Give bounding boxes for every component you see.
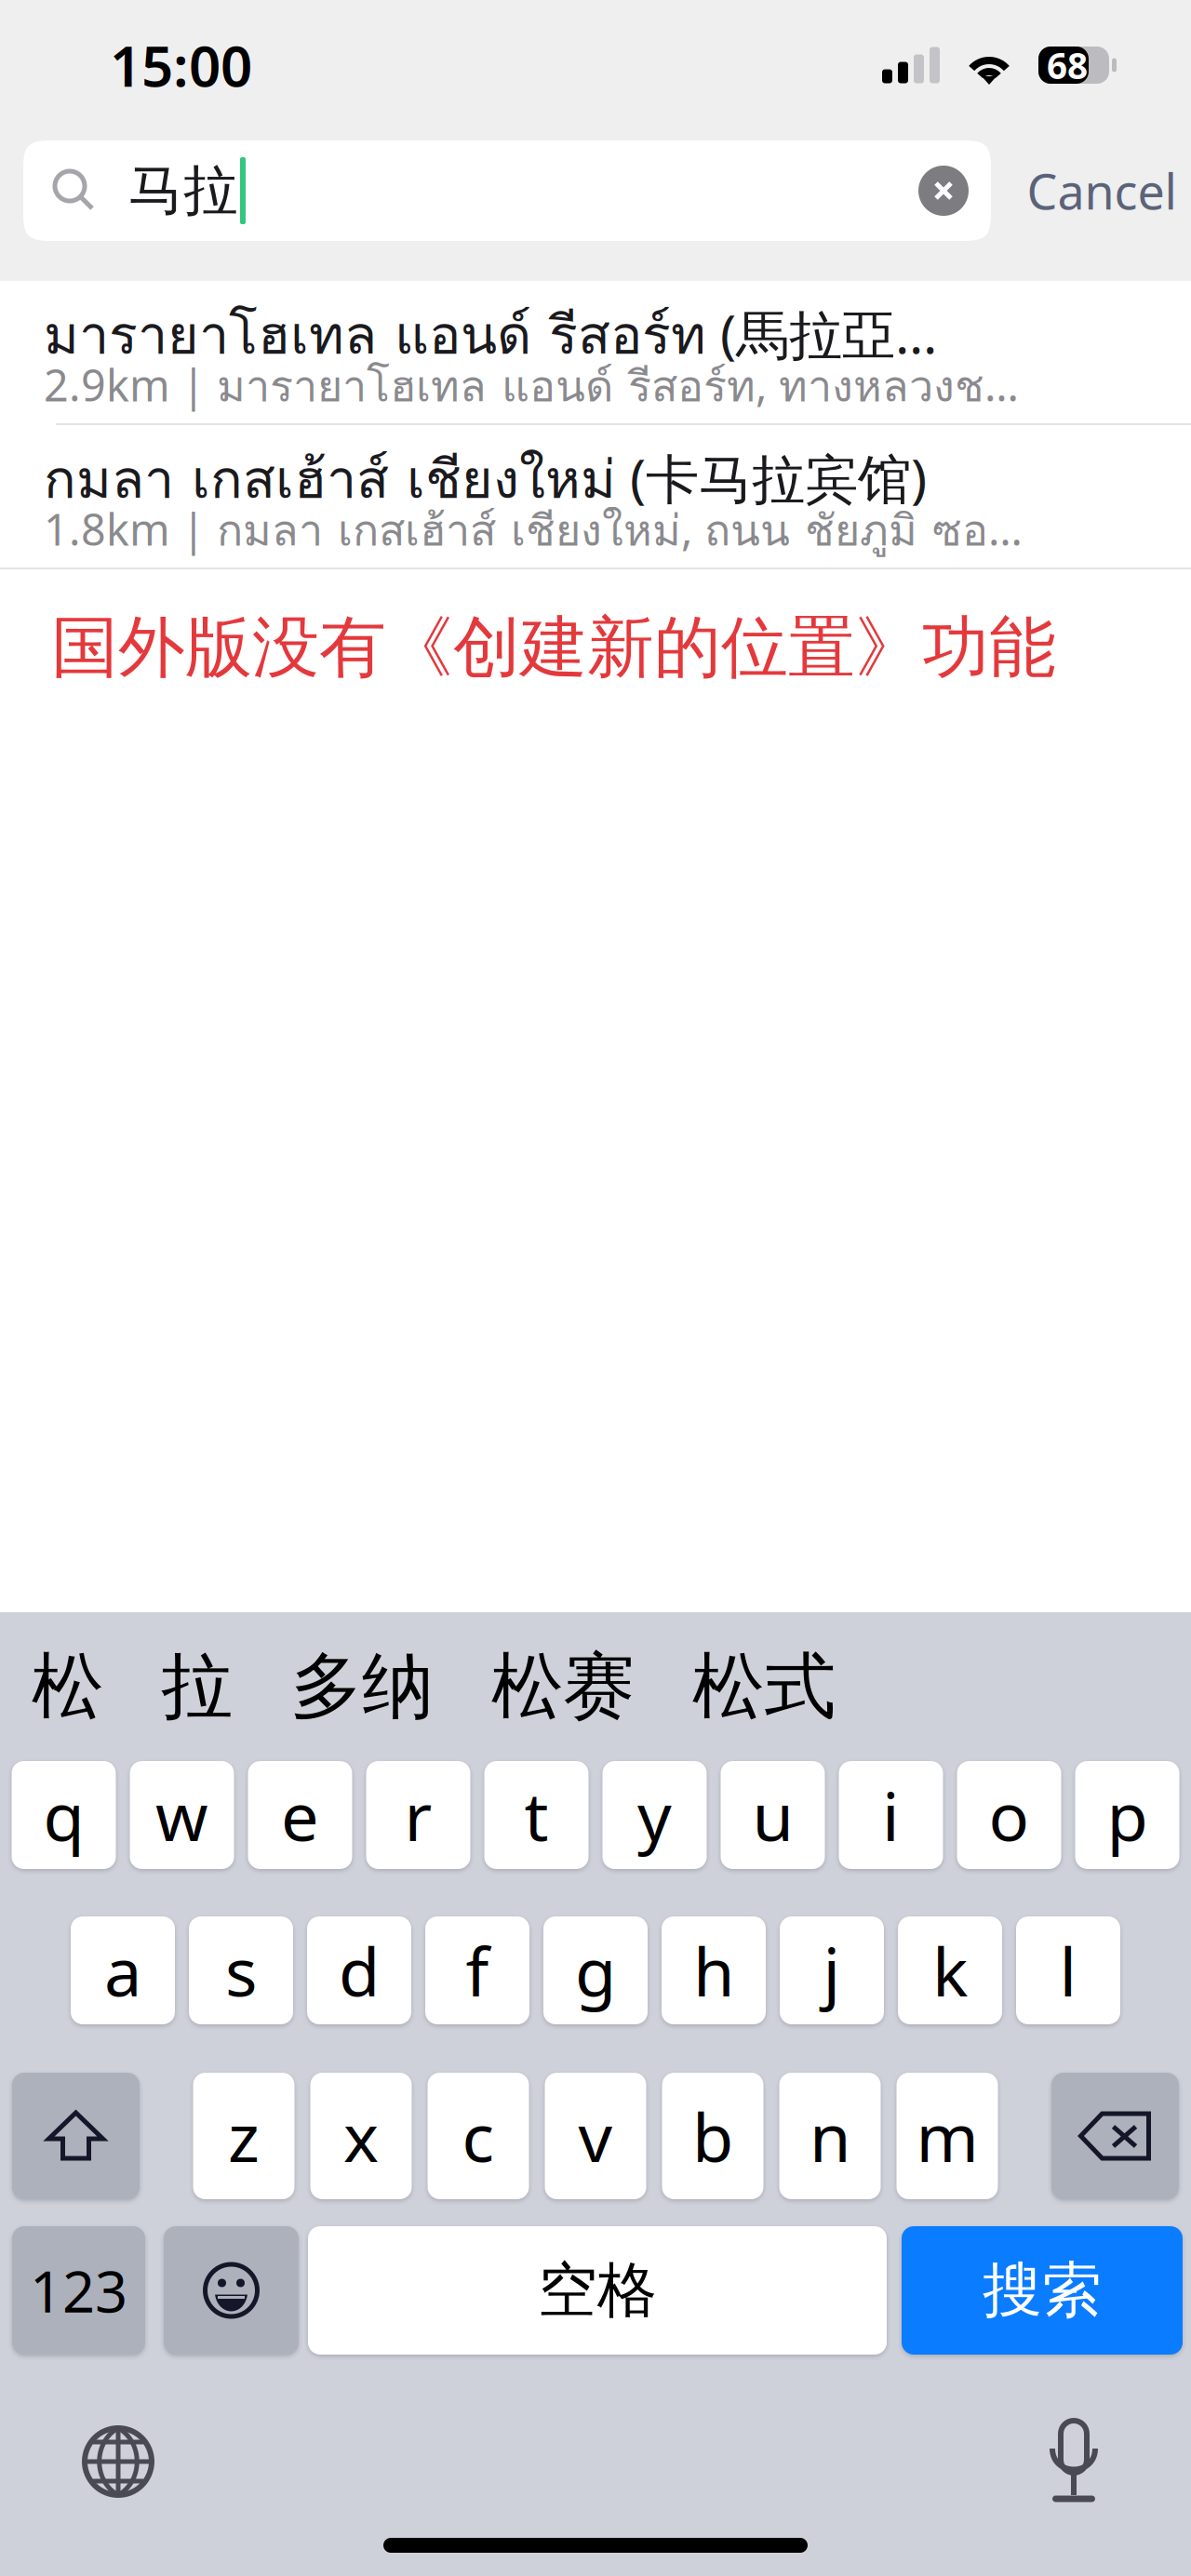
button[interactable]: 多纳 bbox=[261, 1624, 462, 1749]
staticText: h bbox=[693, 1926, 734, 2015]
button[interactable]: 松赛 bbox=[462, 1624, 663, 1749]
staticText: l bbox=[1059, 1926, 1077, 2015]
staticText: i bbox=[882, 1771, 900, 1859]
staticText: 多纳 bbox=[290, 1642, 434, 1731]
staticText: z bbox=[228, 2091, 260, 2180]
staticText: 123 bbox=[30, 2253, 127, 2328]
button[interactable]: u bbox=[721, 1761, 825, 1869]
button[interactable]: s bbox=[189, 1916, 293, 2024]
staticText: u bbox=[752, 1771, 793, 1859]
button[interactable]: g bbox=[543, 1916, 648, 2024]
button[interactable]: x bbox=[310, 2073, 412, 2199]
staticText: y bbox=[637, 1771, 672, 1859]
staticText: 搜索 bbox=[983, 2254, 1102, 2327]
button[interactable]: Cancel bbox=[991, 140, 1191, 241]
button[interactable]: t bbox=[484, 1761, 589, 1869]
staticText: 松赛 bbox=[491, 1642, 635, 1731]
staticText: f bbox=[466, 1926, 489, 2015]
staticText: j bbox=[823, 1926, 841, 2015]
button[interactable]: m bbox=[897, 2073, 998, 2199]
button[interactable]: 松式 bbox=[663, 1624, 864, 1749]
button[interactable]: r bbox=[366, 1761, 470, 1869]
staticText: 68 bbox=[1047, 41, 1088, 89]
button[interactable]: 123 bbox=[12, 2226, 145, 2355]
button[interactable]: 拉 bbox=[132, 1624, 261, 1749]
button[interactable]: 空格 bbox=[308, 2226, 887, 2355]
button[interactable]: v bbox=[545, 2073, 646, 2199]
staticText: x bbox=[343, 2091, 379, 2180]
staticText: q bbox=[43, 1771, 84, 1859]
button[interactable]: q bbox=[12, 1761, 116, 1869]
button[interactable]: f bbox=[425, 1916, 529, 2024]
staticText: Cancel bbox=[1027, 159, 1177, 223]
staticText: w bbox=[155, 1771, 208, 1859]
button[interactable]: Clear text bbox=[918, 141, 991, 240]
button[interactable]: o bbox=[957, 1761, 1061, 1869]
button[interactable]: 松 bbox=[3, 1624, 132, 1749]
button[interactable]: Switch keyboard bbox=[82, 2425, 154, 2498]
button[interactable]: Shift bbox=[12, 2073, 140, 2199]
staticText: 2.9km | มารายาโฮเทล แอนด์ รีสอร์ท, ทางหล… bbox=[44, 352, 1025, 420]
button[interactable]: Delete bbox=[1051, 2073, 1179, 2199]
staticText: t bbox=[524, 1771, 549, 1859]
button[interactable]: z bbox=[193, 2073, 294, 2199]
staticText: 空格 bbox=[538, 2254, 657, 2327]
staticText: b bbox=[692, 2091, 733, 2180]
staticText: v bbox=[578, 2091, 613, 2180]
staticText: 松式 bbox=[692, 1642, 836, 1731]
button[interactable]: e bbox=[248, 1761, 352, 1869]
staticText: 拉 bbox=[161, 1642, 233, 1731]
staticText: 国外版没有《创建新的位置》功能 bbox=[51, 607, 1056, 689]
staticText: 马拉 bbox=[128, 157, 238, 224]
button[interactable]: Dictation bbox=[1049, 2421, 1099, 2503]
staticText: e bbox=[281, 1771, 319, 1859]
button[interactable]: l bbox=[1016, 1916, 1120, 2024]
button[interactable]: i bbox=[839, 1761, 943, 1869]
staticText: 松 bbox=[32, 1642, 103, 1731]
button[interactable]: b bbox=[662, 2073, 763, 2199]
button[interactable]: k bbox=[898, 1916, 1002, 2024]
staticText: p bbox=[1107, 1771, 1148, 1859]
button[interactable]: กมลา เกสเฮ้าส์ เชียงใหม่ (卡马拉宾馆) bbox=[0, 425, 1191, 567]
button[interactable]: w bbox=[130, 1761, 234, 1869]
staticText: 1.8km | กมลา เกสเฮ้าส์ เชียงใหม่, ถนน ชั… bbox=[44, 497, 1025, 564]
staticText: มารายาโฮเทล แอนด์ รีสอร์ท (馬拉亞度假酒店) bbox=[44, 294, 956, 376]
staticText: d bbox=[339, 1926, 380, 2015]
button[interactable]: y bbox=[602, 1761, 707, 1869]
staticText: m bbox=[916, 2091, 978, 2180]
staticText: o bbox=[989, 1771, 1030, 1859]
staticText: a bbox=[104, 1926, 141, 2015]
button[interactable]: d bbox=[307, 1916, 411, 2024]
button[interactable]: Emoji bbox=[164, 2226, 299, 2355]
button[interactable]: n bbox=[779, 2073, 881, 2199]
staticText: n bbox=[810, 2091, 850, 2180]
staticText: k bbox=[932, 1926, 968, 2015]
staticText: c bbox=[462, 2091, 495, 2180]
button[interactable]: 搜索 bbox=[902, 2226, 1183, 2355]
staticText: g bbox=[575, 1926, 616, 2015]
staticText: กมลา เกสเฮ้าส์ เชียงใหม่ (卡马拉宾馆) bbox=[44, 438, 927, 520]
button[interactable]: j bbox=[780, 1916, 884, 2024]
staticText: 15:00 bbox=[110, 28, 252, 102]
staticText: s bbox=[225, 1926, 257, 2015]
button[interactable]: c bbox=[428, 2073, 529, 2199]
staticText: r bbox=[404, 1771, 432, 1859]
button[interactable]: h bbox=[662, 1916, 766, 2024]
button[interactable]: p bbox=[1075, 1761, 1179, 1869]
button[interactable]: a bbox=[71, 1916, 175, 2024]
button[interactable]: มารายาโฮเทล แอนด์ รีสอร์ท (馬拉亞度假酒店) bbox=[0, 281, 1191, 423]
